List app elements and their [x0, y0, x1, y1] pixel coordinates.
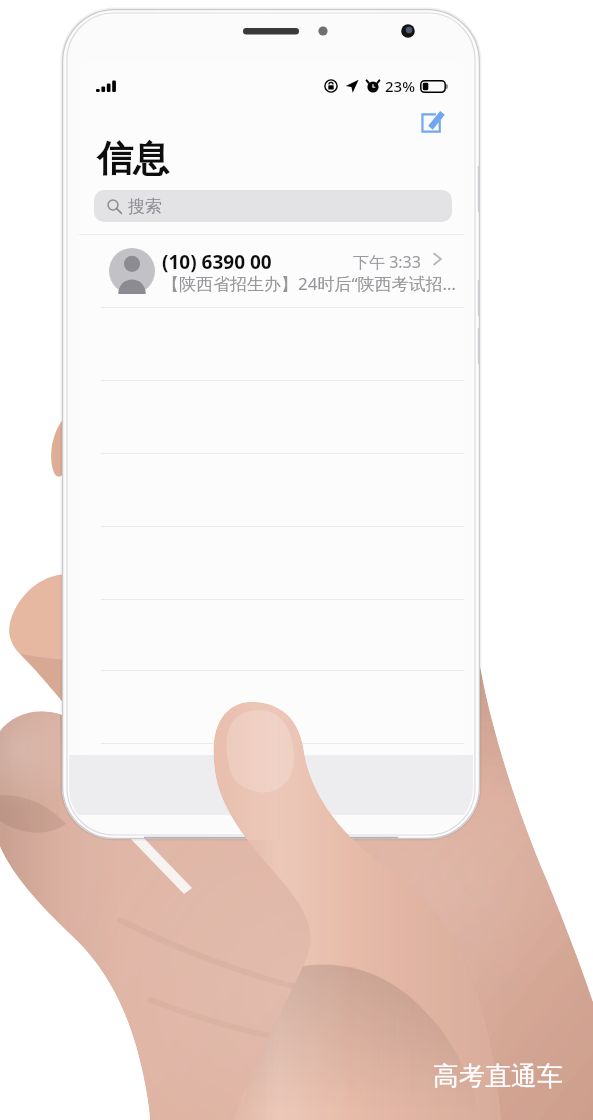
staticText: 高考直通车 — [433, 1060, 563, 1093]
button[interactable]: (10) 6390 00 — [79, 235, 464, 307]
button[interactable]: 搜索 — [94, 190, 452, 222]
staticText: 【陕西省招生办】24时后“陕西考试招… — [162, 272, 456, 295]
staticText: 下午 3:33 — [353, 251, 421, 273]
staticText: 搜索 — [128, 196, 162, 217]
staticText: (10) 6390 00 — [162, 249, 272, 275]
button[interactable]: New message — [418, 106, 448, 136]
staticText: 信息 — [97, 136, 169, 181]
staticText: 23% — [385, 76, 415, 96]
